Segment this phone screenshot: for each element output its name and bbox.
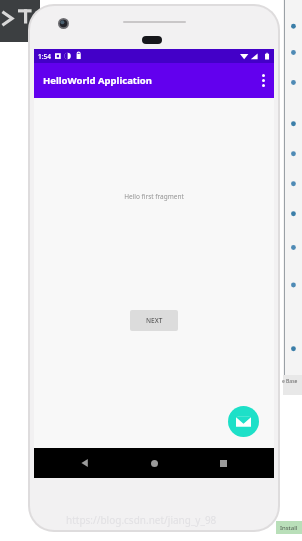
staticText: https://blog.csdn.net/jiang_y_98 [66,513,217,527]
staticText: Install [280,524,298,532]
button[interactable]: Home [144,453,164,473]
staticText: HelloWorld Application [43,74,152,87]
button[interactable]: Back [75,453,95,473]
button[interactable]: NEXT [130,310,178,331]
button[interactable]: Recent apps [213,453,233,473]
staticText: e Base [282,378,298,385]
staticText: 1:54 [38,52,51,61]
button[interactable]: More options [252,63,274,98]
staticText: Hello first fragment [124,192,184,201]
button[interactable]: Install [276,521,302,534]
button[interactable]: Send email [228,406,259,437]
staticText: NEXT [146,316,163,325]
